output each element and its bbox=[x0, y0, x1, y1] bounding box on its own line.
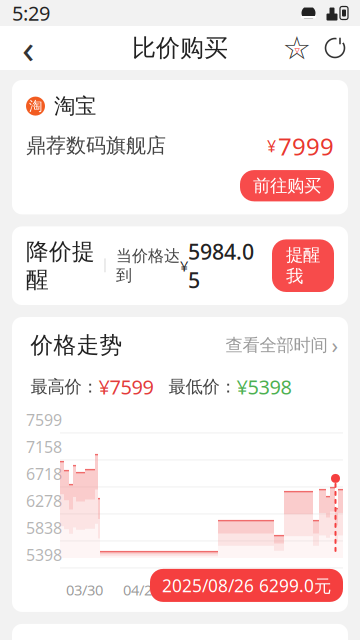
staticText: 价格走势 bbox=[30, 331, 122, 359]
staticText: 最低价： bbox=[153, 376, 236, 397]
staticText: 丨 bbox=[98, 257, 113, 275]
staticText: 5:29 bbox=[12, 0, 50, 26]
button[interactable]: Back bbox=[6, 26, 50, 70]
staticText: 03/30 bbox=[66, 580, 103, 600]
staticText: 比价购买 bbox=[132, 33, 228, 63]
staticText: ¥5398 bbox=[236, 373, 291, 400]
button[interactable]: 查看全部时间 bbox=[225, 331, 338, 359]
staticText: ¥ bbox=[180, 256, 188, 275]
staticText: 5984.05 bbox=[188, 237, 254, 294]
staticText: 05/29 bbox=[180, 580, 217, 600]
button[interactable]: Refresh bbox=[316, 26, 354, 70]
staticText: 前往购买 bbox=[253, 175, 321, 196]
staticText: ▿ bbox=[294, 44, 299, 56]
staticText: 5398 bbox=[26, 544, 62, 565]
staticText: ‹ bbox=[22, 21, 34, 74]
staticText: 鼎荐数码旗舰店 bbox=[26, 133, 166, 158]
staticText: › bbox=[331, 331, 338, 359]
staticText: 5838 bbox=[26, 517, 62, 538]
button[interactable]: 前往购买 bbox=[240, 170, 334, 201]
staticText: 7158 bbox=[26, 436, 62, 457]
staticText: 2025/08/26 6299.0元 bbox=[162, 574, 331, 597]
staticText: 7599 bbox=[26, 409, 62, 430]
staticText: 当价格达到 bbox=[116, 246, 180, 285]
staticText: 04/29 bbox=[123, 580, 160, 600]
staticText: 6278 bbox=[26, 490, 62, 511]
staticText: 降价提醒 bbox=[26, 238, 95, 294]
staticText: ☆ bbox=[282, 30, 311, 66]
button[interactable]: 提醒我 bbox=[272, 239, 334, 292]
staticText: 淘 bbox=[29, 98, 42, 114]
staticText: 淘宝 bbox=[54, 93, 96, 119]
staticText: 6718 bbox=[26, 463, 62, 484]
staticText: ¥7599 bbox=[98, 373, 153, 400]
staticText: ¥ bbox=[267, 135, 276, 157]
button[interactable]: Favorite bbox=[278, 26, 316, 70]
staticText: 查看全部时间 bbox=[225, 334, 327, 356]
staticText: 提醒我 bbox=[286, 244, 320, 287]
staticText: 7999 bbox=[278, 130, 334, 162]
staticText: 最高价： bbox=[30, 376, 98, 397]
